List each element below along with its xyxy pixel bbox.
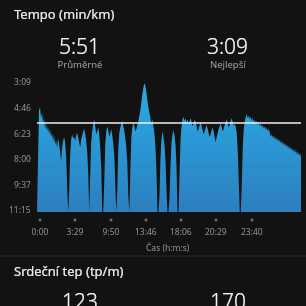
button[interactable]: Heart rate details bbox=[0, 256, 306, 306]
button[interactable]: Pace chart details bbox=[0, 0, 306, 252]
